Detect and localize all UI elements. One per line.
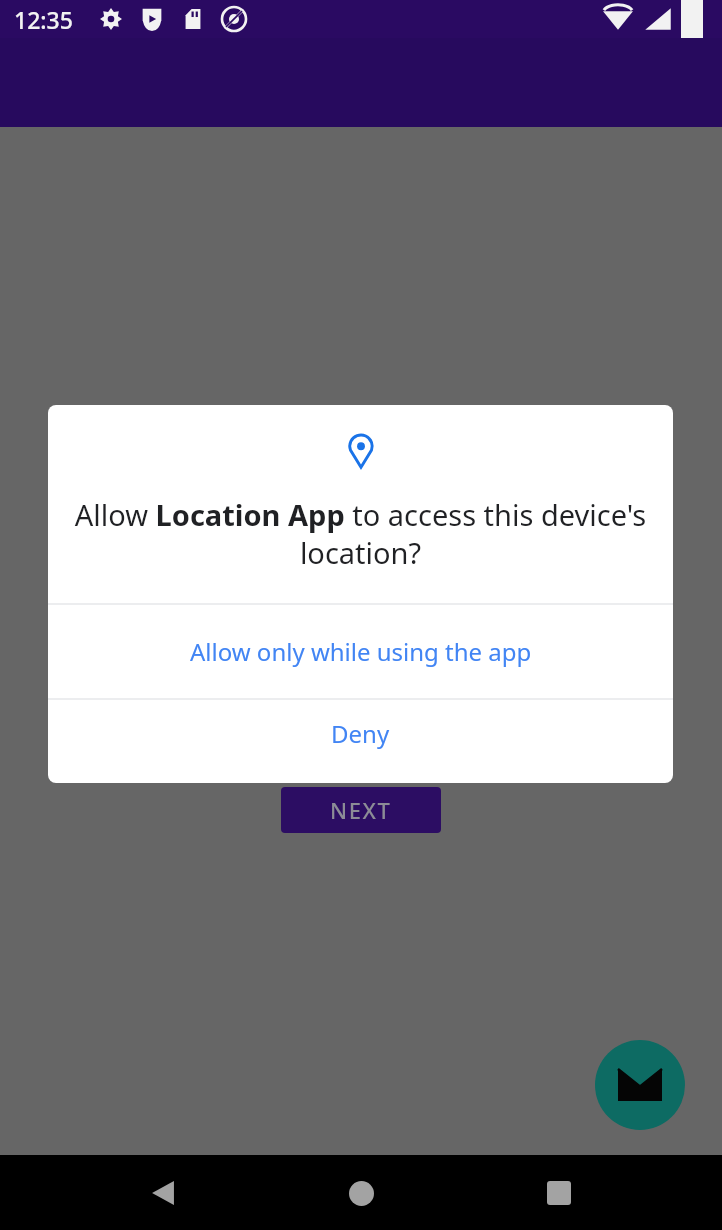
staticText: 12:35: [14, 4, 73, 35]
button[interactable]: Allow only while using the app: [48, 605, 673, 698]
staticText: NEXT: [330, 795, 392, 825]
staticText: Allow Location App to access this device…: [70, 495, 651, 572]
staticText: Allow only while using the app: [190, 635, 532, 668]
button[interactable]: Recent apps: [524, 1158, 594, 1228]
staticText: Deny: [331, 717, 390, 750]
button[interactable]: NEXT: [281, 787, 441, 833]
button[interactable]: Back: [128, 1158, 198, 1228]
button[interactable]: Home: [326, 1158, 396, 1228]
button[interactable]: Deny: [48, 700, 673, 783]
button[interactable]: Compose email: [595, 1040, 685, 1130]
